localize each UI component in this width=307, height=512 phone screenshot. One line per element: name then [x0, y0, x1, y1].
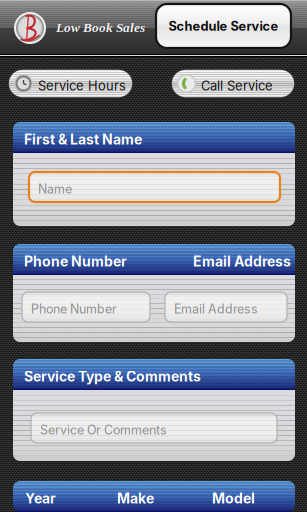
staticText: Model	[212, 490, 255, 507]
staticText: Schedule Service	[168, 18, 278, 34]
staticText: Service Type & Comments	[24, 368, 201, 385]
staticText: Call Service	[201, 78, 273, 94]
button[interactable]: Service Hours	[8, 69, 133, 98]
staticText: Year	[25, 490, 56, 507]
staticText: Low Book Sales	[56, 20, 145, 35]
staticText: Make	[117, 490, 154, 507]
button[interactable]: Call Service	[171, 69, 295, 98]
staticText: Phone Number	[24, 253, 127, 270]
staticText: First & Last Name	[24, 131, 142, 148]
button[interactable]: Schedule Service	[156, 4, 291, 48]
staticText: Email Address	[174, 301, 258, 316]
staticText: Email Address	[193, 253, 291, 270]
staticText: Phone Number	[31, 301, 117, 316]
staticText: Name	[38, 181, 72, 196]
staticText: Service Hours	[38, 78, 126, 94]
staticText: Service Or Comments	[40, 422, 167, 437]
